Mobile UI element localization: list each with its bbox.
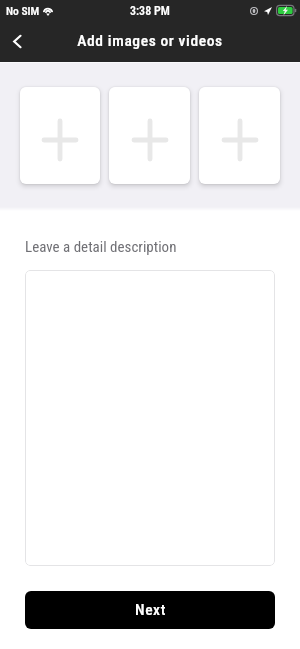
staticText: Leave a detail description bbox=[25, 238, 177, 256]
button[interactable]: Add image or video bbox=[20, 87, 100, 184]
staticText: Next bbox=[135, 601, 166, 619]
button[interactable]: Add image or video bbox=[109, 87, 190, 184]
staticText: Add images or videos bbox=[77, 32, 223, 50]
button[interactable]: Back bbox=[0, 24, 34, 58]
button[interactable]: Next bbox=[25, 591, 275, 629]
button[interactable]: Detail description field bbox=[25, 270, 275, 566]
button[interactable]: Add image or video bbox=[199, 87, 280, 184]
staticText: No SIM bbox=[6, 4, 40, 17]
staticText: 3:38 PM bbox=[130, 4, 170, 18]
